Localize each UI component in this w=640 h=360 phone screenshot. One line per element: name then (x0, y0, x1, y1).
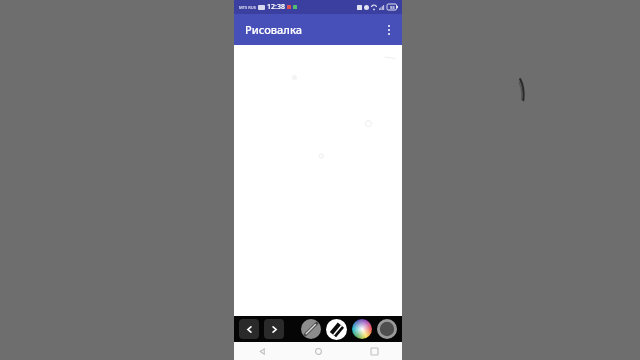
button[interactable]: Colour picker (352, 319, 372, 339)
staticText: Рисовалка (245, 22, 303, 37)
button[interactable]: Pencil (301, 319, 321, 339)
button[interactable]: Home (290, 342, 346, 360)
button[interactable]: More options (376, 17, 402, 43)
button[interactable]: Brush size (377, 319, 397, 339)
staticText: 93 (390, 5, 395, 10)
button[interactable]: Redo (264, 319, 284, 339)
button[interactable]: Back (234, 342, 290, 360)
button[interactable]: Undo (239, 319, 259, 339)
staticText: MTS RUS (239, 5, 256, 10)
staticText: 12:38 (267, 2, 285, 12)
button[interactable]: Eraser (326, 319, 347, 340)
button[interactable]: Recents (346, 342, 402, 360)
